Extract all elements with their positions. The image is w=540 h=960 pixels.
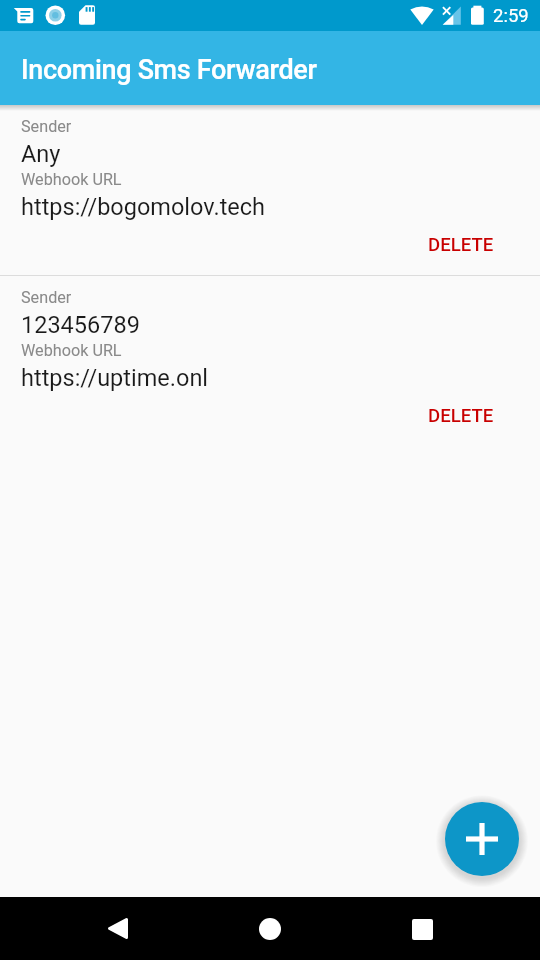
button[interactable]: DELETE xyxy=(413,226,509,264)
staticText: DELETE xyxy=(428,405,494,427)
button[interactable]: Back xyxy=(88,898,148,958)
staticText: Sender xyxy=(21,117,72,136)
staticText: Webhook URL xyxy=(21,341,122,360)
staticText: Webhook URL xyxy=(21,170,122,189)
button[interactable]: Sender xyxy=(0,105,540,275)
staticText: Sender xyxy=(21,288,72,307)
staticText: https://bogomolov.tech xyxy=(21,193,266,221)
staticText: 123456789 xyxy=(21,311,140,339)
staticText: https://uptime.onl xyxy=(21,364,209,392)
staticText: Incoming Sms Forwarder xyxy=(21,54,317,86)
button[interactable]: DELETE xyxy=(413,397,509,435)
button[interactable]: Add xyxy=(445,802,519,876)
button[interactable]: Home xyxy=(240,899,300,959)
button[interactable]: Sender xyxy=(0,276,540,446)
staticText: DELETE xyxy=(428,234,494,256)
staticText: Any xyxy=(21,140,61,168)
button[interactable]: Recent apps xyxy=(392,899,452,959)
staticText: 2:59 xyxy=(493,5,529,27)
